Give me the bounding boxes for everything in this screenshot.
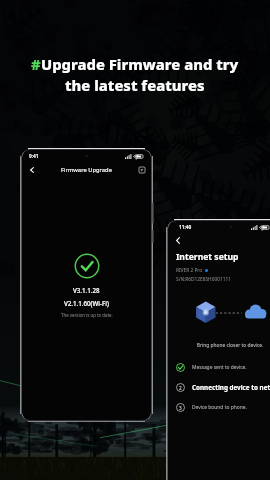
button[interactable]: Message sent to device. [176, 357, 270, 377]
button[interactable]: Back [26, 164, 37, 175]
staticText: Firmware Upgrade [61, 166, 112, 174]
staticText: Upgrade Firmware and try [41, 54, 239, 74]
staticText: Message sent to device. [192, 364, 247, 371]
staticText: S/N:R6D12E8SH0001111 [176, 276, 231, 283]
button[interactable]: Back [172, 234, 184, 246]
staticText: Internet setup [176, 251, 239, 263]
staticText: V2.1.1.60(Wi-Fi) [64, 299, 109, 307]
staticText: # [31, 54, 41, 74]
staticText: Bring phone closer to device. [168, 342, 270, 349]
staticText: the latest features [65, 75, 205, 95]
button[interactable]: 2 [176, 377, 270, 397]
staticText: V3.1.1.28 [73, 286, 100, 294]
staticText: The version is up to date. [61, 312, 113, 318]
button[interactable]: 3 [176, 397, 270, 417]
staticText: 11:40 [179, 224, 192, 231]
staticText: 9:41 [29, 153, 39, 160]
button[interactable]: Release notes [136, 164, 147, 175]
staticText: Device bound to phone. [192, 404, 247, 411]
staticText: 3 [179, 405, 182, 411]
staticText: Connecting device to network. [192, 383, 270, 392]
staticText: RIVER 2 Pro [176, 267, 203, 274]
staticText: 2 [179, 385, 182, 391]
